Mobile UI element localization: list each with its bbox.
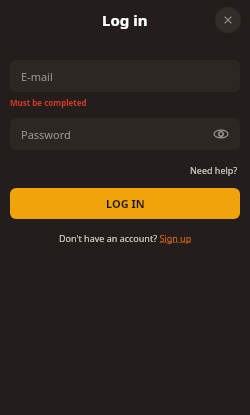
- staticText: Must be completed: [10, 97, 87, 108]
- staticText: LOG IN: [106, 196, 145, 211]
- staticText: Log in: [102, 10, 148, 30]
- button[interactable]: Show password: [210, 123, 232, 145]
- button[interactable]: LOG IN: [10, 188, 240, 219]
- button[interactable]: E-mail: [10, 60, 240, 92]
- staticText: Need help?: [190, 164, 238, 176]
- staticText: Password: [21, 127, 71, 142]
- button[interactable]: Don't have an account? Sign up: [55, 230, 196, 246]
- staticText: Don't have an account? Sign up: [59, 232, 192, 244]
- button[interactable]: Close: [215, 7, 241, 33]
- staticText: E-mail: [21, 69, 53, 84]
- button[interactable]: Need help?: [188, 162, 240, 178]
- button[interactable]: Password: [10, 118, 240, 150]
